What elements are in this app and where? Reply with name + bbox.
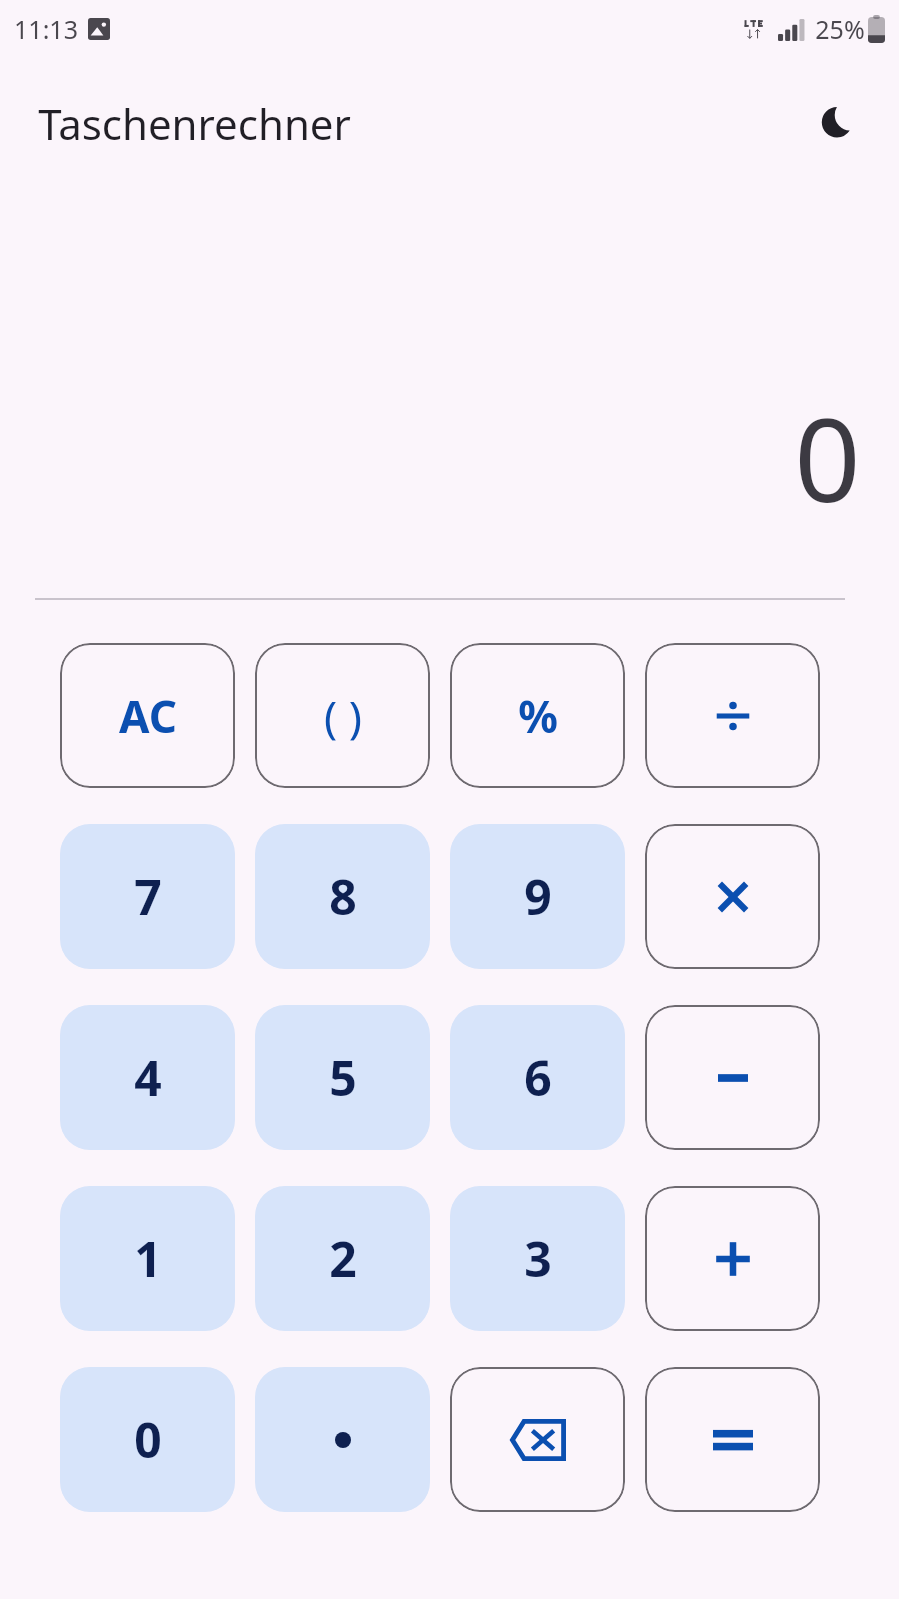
staticText: 3 xyxy=(524,1226,552,1291)
button[interactable]: Minus xyxy=(645,1005,820,1150)
button[interactable]: ( ) xyxy=(255,643,430,788)
staticText: 0 xyxy=(134,1407,162,1472)
staticText: 1 xyxy=(134,1226,162,1291)
button[interactable]: 9 xyxy=(450,824,625,969)
staticText: 11:13 xyxy=(14,12,78,46)
staticText: 8 xyxy=(329,864,357,929)
button[interactable]: 1 xyxy=(60,1186,235,1331)
button[interactable]: 8 xyxy=(255,824,430,969)
staticText: 6 xyxy=(524,1045,552,1110)
staticText: 2 xyxy=(329,1226,357,1291)
button[interactable]: 2 xyxy=(255,1186,430,1331)
button[interactable]: Löschen xyxy=(450,1367,625,1512)
button[interactable]: AC xyxy=(60,643,235,788)
staticText: 0 xyxy=(794,378,861,536)
button[interactable]: Mal xyxy=(645,824,820,969)
staticText: 9 xyxy=(524,864,552,929)
button[interactable]: 5 xyxy=(255,1005,430,1150)
button[interactable]: Dunkles Design umschalten xyxy=(805,91,869,155)
staticText: AC xyxy=(119,686,177,746)
staticText: 7 xyxy=(134,864,162,929)
staticText: 25% xyxy=(815,12,865,46)
staticText: Taschenrechner xyxy=(38,95,351,152)
staticText: % xyxy=(518,686,558,746)
button[interactable]: 3 xyxy=(450,1186,625,1331)
button[interactable]: Geteilt durch xyxy=(645,643,820,788)
button[interactable]: 6 xyxy=(450,1005,625,1150)
button[interactable]: Plus xyxy=(645,1186,820,1331)
staticText: ( ) xyxy=(324,686,362,746)
staticText: 4 xyxy=(134,1045,162,1110)
button[interactable]: 0 xyxy=(60,1367,235,1512)
button[interactable]: 7 xyxy=(60,824,235,969)
button[interactable]: Gleich xyxy=(645,1367,820,1512)
staticText: 5 xyxy=(329,1045,357,1110)
button[interactable] xyxy=(255,1367,430,1512)
button[interactable]: % xyxy=(450,643,625,788)
button[interactable]: 4 xyxy=(60,1005,235,1150)
